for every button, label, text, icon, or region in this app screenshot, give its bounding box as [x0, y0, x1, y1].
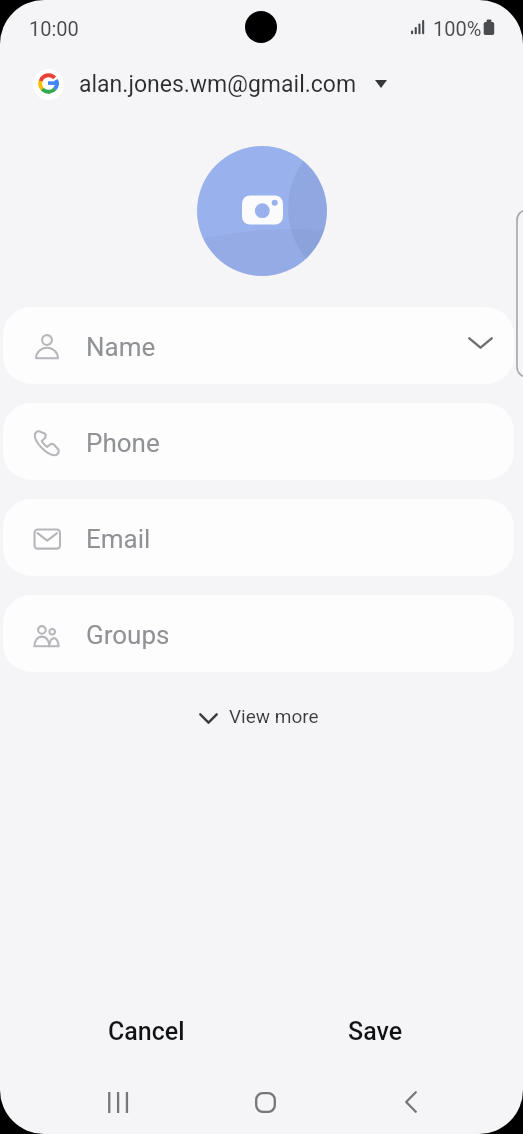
button[interactable]: Home: [234, 1071, 296, 1133]
staticText: Name: [86, 332, 156, 362]
staticText: Save: [348, 1017, 403, 1046]
staticText: 10:00: [29, 17, 79, 40]
button[interactable]: Cancel: [33, 995, 259, 1067]
button[interactable]: Back: [380, 1071, 442, 1133]
button[interactable]: Email: [3, 499, 514, 576]
button[interactable]: Name: [3, 307, 514, 384]
button[interactable]: Add photo: [197, 146, 327, 276]
button[interactable]: Groups: [3, 595, 514, 672]
staticText: Groups: [86, 620, 170, 650]
button[interactable]: Recent apps: [87, 1071, 149, 1133]
button[interactable]: Save: [262, 995, 488, 1067]
staticText: 100%: [433, 17, 482, 40]
button[interactable]: View more: [185, 698, 333, 738]
button[interactable]: alan.jones.wm@gmail.com: [0, 56, 523, 112]
staticText: Cancel: [108, 1017, 185, 1046]
staticText: alan.jones.wm@gmail.com: [79, 71, 357, 98]
staticText: View more: [229, 705, 319, 727]
staticText: Phone: [86, 428, 160, 458]
button[interactable]: Phone: [3, 403, 514, 480]
staticText: Email: [86, 524, 151, 554]
